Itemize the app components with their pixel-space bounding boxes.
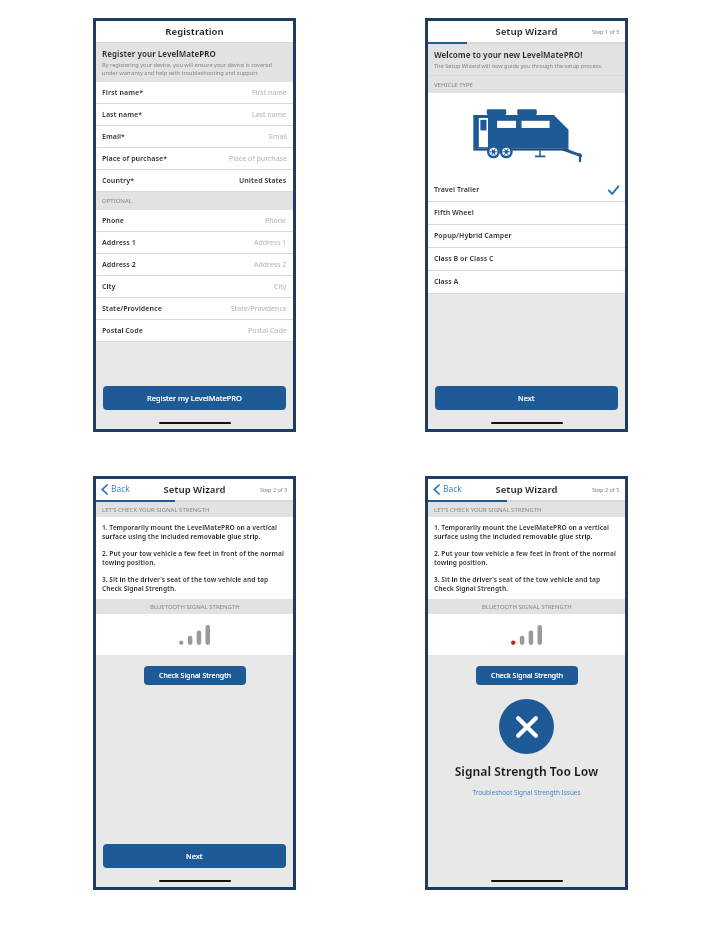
staticText: Setup Wizard [163,483,226,496]
button[interactable]: Email* [95,126,294,147]
button[interactable]: Address 1 [95,232,294,253]
button[interactable]: Back [100,481,132,497]
staticText: Class B or Class C [434,254,494,264]
staticText: State/Providence [102,304,162,314]
staticText: Check Signal Strength [159,671,232,681]
staticText: Country* [102,176,134,186]
staticText: Register your LevelMatePRO [102,48,216,59]
staticText: Address 1 [254,238,287,248]
button[interactable]: Check Signal Strength [476,666,578,685]
button[interactable]: Fifth Wheel [427,202,626,224]
staticText: Postal Code [248,326,287,336]
staticText: Email [269,132,287,142]
button[interactable]: Next [103,844,286,868]
staticText: LET'S CHECK YOUR SIGNAL STRENGTH [434,506,542,514]
staticText: LET'S CHECK YOUR SIGNAL STRENGTH [102,506,210,514]
staticText: 1. Temporarily mount the LevelMatePRO on… [434,523,619,541]
button[interactable]: Check Signal Strength [144,666,246,685]
staticText: Signal Strength Too Low [427,763,626,779]
staticText: Place of purchase [229,154,287,164]
staticText: Step 2 of 5 [592,486,620,493]
button[interactable]: Class A [427,271,626,293]
button[interactable]: Popup/Hybrid Camper [427,225,626,247]
staticText: First name* [102,88,143,98]
button[interactable]: First name* [95,82,294,103]
staticText: Step 2 of 5 [260,486,288,493]
staticText: Class A [434,277,459,287]
button[interactable]: City [95,276,294,297]
staticText: First name [252,88,287,98]
staticText: Setup Wizard [495,483,558,496]
button[interactable]: Register my LevelMatePRO [103,386,286,410]
staticText: Troubleshoot Signal Strength Issues [472,788,581,797]
staticText: Popup/Hybrid Camper [434,231,512,241]
staticText: Check Signal Strength [491,671,564,681]
staticText: 3. Sit in the driver's seat of the tow v… [434,575,619,593]
staticText: Email* [102,132,125,142]
staticText: 2. Put your tow vehicle a few feet in fr… [102,549,287,567]
staticText: Back [111,483,130,495]
staticText: Place of purchase* [102,154,167,164]
button[interactable]: Troubleshoot Signal Strength Issues [468,786,585,799]
staticText: Next [518,393,535,403]
button[interactable]: Phone [95,210,294,231]
staticText: Address 1 [102,238,136,248]
staticText: City [102,282,116,292]
staticText: Register my LevelMatePRO [147,393,242,403]
staticText: Travel Trailer [434,185,480,195]
staticText: Step 1 of 5 [592,28,620,35]
button[interactable]: Next [435,386,618,410]
staticText: Back [443,483,462,495]
staticText: United States [239,176,287,186]
staticText: VEHICLE TYPE [434,81,473,89]
button[interactable]: State/Providence [95,298,294,319]
button[interactable]: Class B or Class C [427,248,626,270]
staticText: Postal Code [102,326,143,336]
staticText: 1. Temporarily mount the LevelMatePRO on… [102,523,287,541]
button[interactable]: Place of purchase* [95,148,294,169]
staticText: Next [186,851,203,861]
button[interactable]: Address 2 [95,254,294,275]
staticText: Address 2 [102,260,136,270]
button[interactable]: Back [432,481,464,497]
staticText: City [274,282,287,292]
staticText: By registering your device, you will ens… [102,61,287,77]
staticText: Setup Wizard [495,25,558,38]
staticText: Last name [252,110,287,120]
staticText: Phone [102,216,125,226]
button[interactable]: Last name* [95,104,294,125]
button[interactable]: Postal Code [95,320,294,341]
staticText: Phone [265,216,287,226]
staticText: Welcome to your new LevelMatePRO! [434,49,583,60]
staticText: BLUETOOTH SIGNAL STRENGTH [150,603,240,611]
staticText: State/Providence [231,304,287,314]
staticText: Fifth Wheel [434,208,474,218]
staticText: 2. Put your tow vehicle a few feet in fr… [434,549,619,567]
staticText: Last name* [102,110,143,120]
button[interactable]: Country* [95,170,294,191]
staticText: OPTIONAL [102,197,132,205]
staticText: Address 2 [254,260,287,270]
button[interactable]: Travel Trailer [427,179,626,201]
staticText: The Setup Wizard will now guide you thro… [434,62,603,70]
staticText: 3. Sit in the driver's seat of the tow v… [102,575,287,593]
staticText: Registration [165,25,224,38]
staticText: BLUETOOTH SIGNAL STRENGTH [482,603,572,611]
